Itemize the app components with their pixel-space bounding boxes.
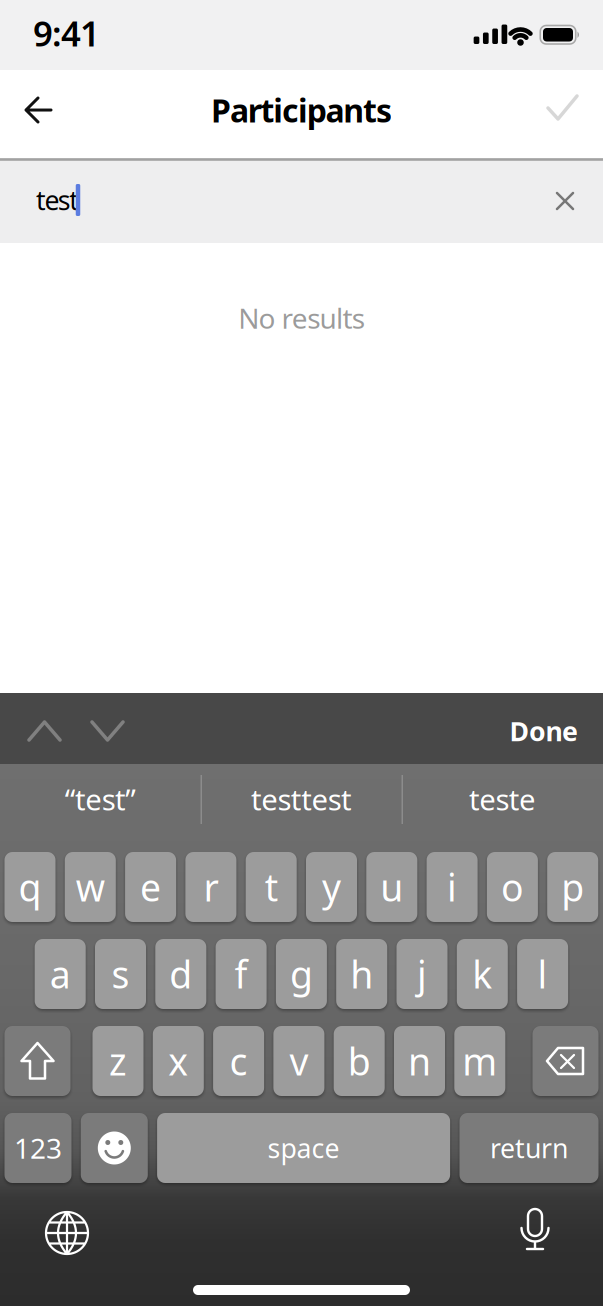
button[interactable]: i [427, 852, 478, 922]
button[interactable]: r [185, 852, 236, 922]
button[interactable]: n [394, 1026, 445, 1096]
staticText: Done [509, 713, 578, 749]
button[interactable] [532, 1026, 598, 1096]
staticText: x [168, 1036, 188, 1086]
button[interactable]: t [246, 852, 297, 922]
staticText: return [490, 1130, 568, 1166]
button[interactable]: teste [405, 769, 600, 829]
staticText: s [111, 949, 129, 999]
staticText: m [462, 1036, 497, 1086]
staticText: test [36, 182, 79, 218]
staticText: o [501, 862, 524, 912]
button[interactable] [543, 179, 587, 223]
staticText: n [408, 1036, 431, 1086]
button[interactable]: test [0, 158, 603, 243]
staticText: c [230, 1036, 248, 1086]
staticText: “test” [65, 779, 136, 818]
staticText: p [561, 862, 584, 912]
staticText: a [50, 949, 71, 999]
staticText: g [290, 949, 313, 999]
button[interactable]: k [457, 939, 508, 1009]
button[interactable] [16, 88, 60, 132]
button[interactable]: g [276, 939, 327, 1009]
button[interactable]: 123 [4, 1113, 71, 1183]
button[interactable]: s [95, 939, 146, 1009]
staticText: k [472, 949, 492, 999]
staticText: testtest [251, 779, 352, 818]
staticText: i [447, 862, 457, 912]
button[interactable] [540, 87, 584, 131]
button[interactable]: return [459, 1113, 598, 1183]
button[interactable]: a [35, 939, 86, 1009]
staticText: 123 [14, 1129, 62, 1167]
staticText: space [268, 1130, 340, 1166]
staticText: q [18, 862, 41, 912]
button[interactable]: v [273, 1026, 324, 1096]
button[interactable]: q [4, 852, 55, 922]
button[interactable]: p [547, 852, 598, 922]
staticText: l [538, 949, 548, 999]
staticText: z [109, 1036, 127, 1086]
staticText: 9:41 [33, 10, 100, 56]
button[interactable] [81, 1113, 148, 1183]
staticText: Participants [211, 89, 392, 131]
button[interactable]: d [155, 939, 206, 1009]
staticText: t [265, 862, 278, 912]
button[interactable]: z [92, 1026, 143, 1096]
button[interactable] [4, 1026, 70, 1096]
button[interactable] [85, 709, 129, 753]
staticText: e [140, 862, 161, 912]
staticText: f [235, 949, 248, 999]
button[interactable]: b [334, 1026, 385, 1096]
staticText: teste [469, 779, 536, 818]
button[interactable]: m [454, 1026, 505, 1096]
staticText: d [169, 949, 192, 999]
button[interactable]: j [396, 939, 447, 1009]
button[interactable]: c [213, 1026, 264, 1096]
button[interactable]: y [306, 852, 357, 922]
button[interactable] [22, 709, 66, 753]
staticText: y [322, 862, 341, 912]
button[interactable]: testtest [204, 769, 399, 829]
button[interactable]: space [157, 1113, 450, 1183]
button[interactable]: e [125, 852, 176, 922]
button[interactable]: x [153, 1026, 204, 1096]
staticText: w [76, 862, 105, 912]
button[interactable]: l [517, 939, 568, 1009]
button[interactable]: Done [438, 701, 578, 761]
staticText: No results [238, 299, 365, 337]
button[interactable]: o [487, 852, 538, 922]
staticText: j [417, 949, 427, 999]
staticText: v [289, 1036, 308, 1086]
button[interactable] [40, 1206, 94, 1260]
staticText: h [350, 949, 373, 999]
button[interactable]: h [336, 939, 387, 1009]
button[interactable]: w [65, 852, 116, 922]
staticText: u [380, 862, 403, 912]
button[interactable]: u [366, 852, 417, 922]
staticText: r [203, 862, 218, 912]
button[interactable] [508, 1204, 562, 1258]
button[interactable]: f [216, 939, 267, 1009]
staticText: b [348, 1036, 371, 1086]
button[interactable]: “test” [3, 769, 198, 829]
